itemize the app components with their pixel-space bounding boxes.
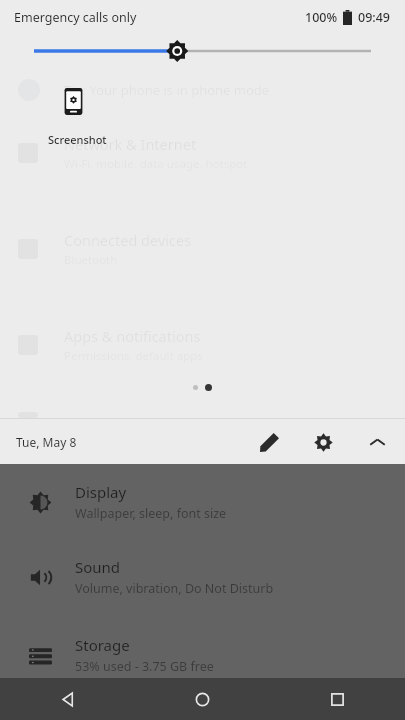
- staticText: Display: [75, 482, 127, 502]
- button[interactable]: Brightness: [0, 34, 405, 68]
- staticText: Apps & notifications: [64, 326, 201, 346]
- staticText: Screenshot: [48, 132, 107, 147]
- staticText: 09:49: [358, 9, 391, 26]
- staticText: 53% used - 3.75 GB free: [75, 658, 214, 675]
- staticText: Emergency calls only: [14, 9, 137, 26]
- staticText: Network & Internet: [64, 134, 197, 154]
- staticText: Sound: [75, 557, 121, 577]
- button[interactable]: Recents: [270, 678, 405, 720]
- staticText: Storage: [75, 635, 130, 655]
- button[interactable]: Sound: [0, 538, 405, 616]
- button[interactable]: Home: [135, 678, 270, 720]
- button[interactable]: Storage: [0, 616, 405, 694]
- staticText: Wallpaper, sleep, font size: [75, 505, 227, 522]
- button[interactable]: Back: [0, 678, 135, 720]
- button[interactable]: Edit: [251, 424, 287, 460]
- button[interactable]: Settings: [305, 424, 341, 460]
- staticText: 100%: [305, 9, 338, 26]
- staticText: Tue, May 8: [16, 434, 77, 450]
- button[interactable]: Display: [0, 466, 405, 538]
- staticText: Volume, vibration, Do Not Disturb: [75, 580, 274, 597]
- button[interactable]: Collapse: [359, 424, 395, 460]
- staticText: Connected devices: [64, 230, 192, 250]
- staticText: Tip: Your phone is in phone mode: [64, 81, 270, 99]
- button[interactable]: Screenshot: [44, 84, 111, 151]
